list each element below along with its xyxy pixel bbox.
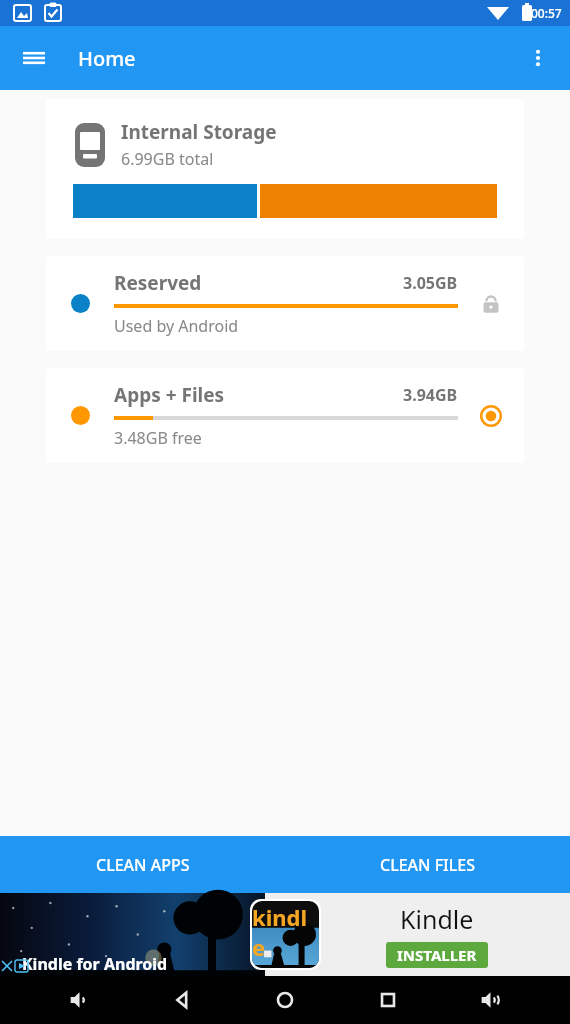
staticText: 3.94GB xyxy=(403,384,458,406)
staticText: CLEAN FILES xyxy=(380,854,476,876)
button[interactable]: More options xyxy=(516,36,560,80)
staticText: Internal Storage xyxy=(121,119,277,145)
button[interactable]: Open navigation menu xyxy=(12,36,56,80)
staticText: Home xyxy=(78,45,136,72)
button[interactable]: Internal Storage xyxy=(46,99,524,239)
staticText: 6.99GB total xyxy=(121,148,214,170)
button[interactable]: Kindle for Android xyxy=(0,893,570,976)
staticText: INSTALLER xyxy=(397,945,477,965)
button[interactable]: Reserved xyxy=(46,256,524,351)
button[interactable]: Locked xyxy=(458,256,524,351)
button[interactable]: Volume down xyxy=(55,976,103,1024)
button[interactable]: INSTALLER xyxy=(397,945,477,965)
button[interactable]: Back xyxy=(158,976,206,1024)
button[interactable]: Apps + Files xyxy=(46,368,524,463)
staticText: Reserved xyxy=(114,270,202,296)
button[interactable]: CLEAN FILES xyxy=(285,836,570,893)
button[interactable]: Volume up xyxy=(467,976,515,1024)
staticText: Kindle for Android xyxy=(22,953,168,975)
staticText: 3.48GB free xyxy=(114,427,202,449)
staticText: Used by Android xyxy=(114,315,239,337)
staticText: 3.05GB xyxy=(403,272,458,294)
button[interactable]: Home xyxy=(261,976,309,1024)
staticText: kindle xyxy=(252,902,319,962)
staticText: Kindle xyxy=(400,902,474,936)
button[interactable]: CLEAN APPS xyxy=(0,836,285,893)
staticText: 00:57 xyxy=(531,5,562,21)
button[interactable]: Recent apps xyxy=(364,976,412,1024)
button[interactable]: Select xyxy=(458,368,524,463)
staticText: CLEAN APPS xyxy=(96,854,190,876)
staticText: Apps + Files xyxy=(114,382,225,408)
